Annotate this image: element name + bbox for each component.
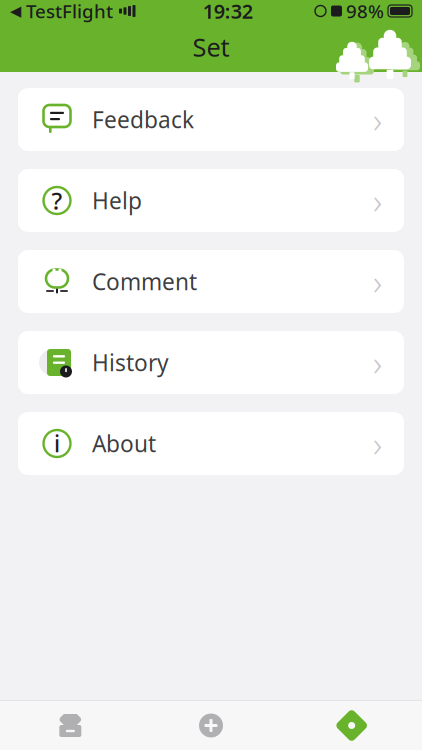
staticText: TestFlight xyxy=(21,0,113,23)
button[interactable]: Add xyxy=(141,701,281,750)
staticText: › xyxy=(373,339,382,385)
button[interactable]: Settings xyxy=(281,701,422,750)
staticText: Help xyxy=(92,185,142,215)
staticText: 19:32 xyxy=(203,0,253,24)
staticText: About xyxy=(92,428,156,458)
button[interactable]: i xyxy=(18,412,404,475)
staticText: i xyxy=(54,428,60,458)
button[interactable]: ? xyxy=(18,169,404,232)
staticText: › xyxy=(373,420,382,466)
staticText: Set xyxy=(192,30,229,64)
staticText: › xyxy=(373,96,382,142)
button[interactable]: Home xyxy=(0,701,141,750)
staticText: › xyxy=(373,258,382,304)
staticText: 98% xyxy=(346,0,384,23)
staticText: Comment xyxy=(92,266,197,296)
button[interactable]: Feedback xyxy=(18,88,404,151)
button[interactable]: Comment xyxy=(18,250,404,313)
staticText: ? xyxy=(51,185,62,216)
staticText: History xyxy=(92,347,169,377)
button[interactable]: History xyxy=(18,331,404,394)
staticText: › xyxy=(373,177,382,223)
staticText: Feedback xyxy=(92,104,194,134)
staticText: ◀ xyxy=(10,3,21,19)
